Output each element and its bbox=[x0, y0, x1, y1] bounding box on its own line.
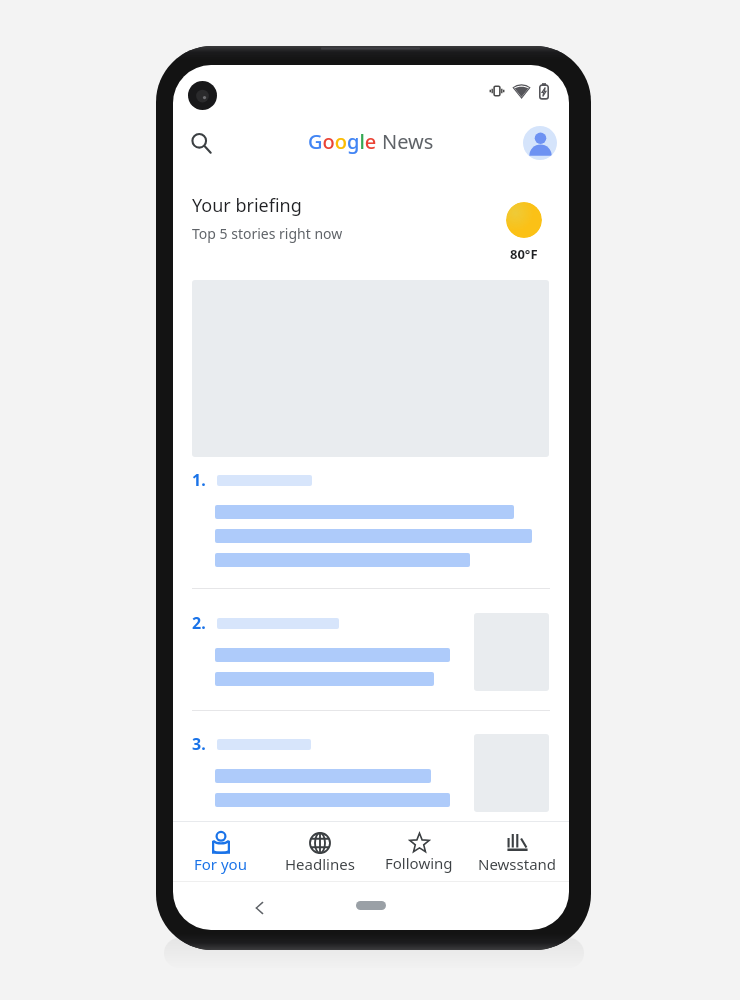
button[interactable]: For you bbox=[189, 822, 252, 878]
button[interactable]: 1. bbox=[173, 469, 569, 567]
button[interactable]: Account bbox=[523, 126, 557, 160]
staticText: 1. bbox=[192, 469, 206, 491]
staticText: For you bbox=[194, 854, 247, 874]
staticText: 3. bbox=[192, 733, 206, 755]
button[interactable]: Back bbox=[255, 901, 264, 915]
staticText: 2. bbox=[192, 612, 206, 634]
button[interactable]: 2. bbox=[173, 612, 569, 690]
staticText: News bbox=[382, 128, 434, 155]
staticText: 80°F bbox=[510, 245, 538, 263]
button[interactable]: Headlines bbox=[280, 822, 360, 878]
button[interactable]: Following bbox=[380, 822, 458, 877]
button[interactable]: Newsstand bbox=[473, 822, 562, 878]
staticText: Following bbox=[385, 853, 453, 873]
staticText: Google bbox=[308, 128, 377, 155]
staticText: Newsstand bbox=[478, 854, 557, 874]
button[interactable]: Search bbox=[181, 123, 221, 163]
button[interactable]: Weather 80°F bbox=[506, 202, 542, 263]
staticText: Top 5 stories right now bbox=[192, 224, 343, 243]
staticText: Headlines bbox=[285, 854, 355, 874]
staticText: Your briefing bbox=[192, 193, 302, 218]
button[interactable]: 3. bbox=[173, 733, 569, 811]
